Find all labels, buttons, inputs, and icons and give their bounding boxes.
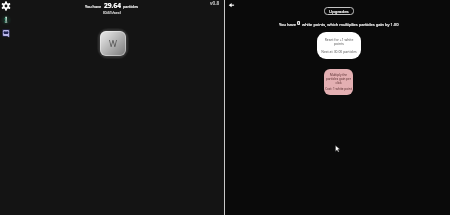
staticText: Cost: 1 white point xyxy=(325,87,352,91)
staticText: Next at 30.00 particles xyxy=(321,49,357,54)
staticText: Upgrades xyxy=(329,8,349,14)
staticText: particles xyxy=(123,4,139,9)
staticText: You have xyxy=(85,4,102,9)
staticText: Reset for +1 white points xyxy=(321,37,357,46)
button[interactable]: Back xyxy=(228,1,236,9)
staticText: You have xyxy=(279,22,296,27)
staticText: (0.61/sec) xyxy=(103,10,121,15)
button[interactable]: Settings xyxy=(1,1,11,11)
staticText: W xyxy=(109,38,117,50)
staticText: 0 xyxy=(297,19,301,27)
button[interactable]: Reset for +1 white points xyxy=(317,32,361,59)
button[interactable]: Discord xyxy=(2,29,10,37)
staticText: Multiply the particles gain per click xyxy=(325,73,352,85)
button[interactable]: Upgrades xyxy=(324,7,354,15)
button[interactable]: Multiply the particles gain per click xyxy=(324,69,353,95)
staticText: 29.64 xyxy=(104,1,121,10)
button[interactable]: Generate particle xyxy=(100,31,126,56)
staticText: white points, which multiplies particles… xyxy=(302,22,399,27)
staticText: v0.8 xyxy=(210,0,220,7)
button[interactable]: Achievements xyxy=(2,16,10,24)
